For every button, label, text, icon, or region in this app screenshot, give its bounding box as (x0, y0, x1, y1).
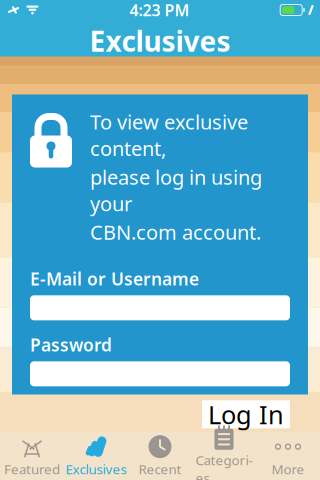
staticText: Forgot Password? (30, 446, 126, 480)
staticText: Create Account (215, 446, 290, 480)
staticText: Log In (208, 397, 284, 431)
staticText: Password (30, 333, 112, 356)
button[interactable]: More (256, 432, 320, 480)
button[interactable]: Exclusives (64, 432, 128, 480)
staticText: Exclusives (65, 460, 126, 478)
staticText: Categories (195, 451, 252, 480)
staticText: please log in using your (90, 164, 262, 217)
button[interactable]: Forgot Password? (30, 446, 126, 480)
staticText: To view exclusive content, (90, 108, 248, 162)
staticText: CBN.com account. (90, 219, 261, 245)
staticText: 4:23 PM (129, 0, 189, 21)
staticText: Recent (138, 460, 181, 478)
staticText: More (271, 460, 304, 478)
staticText: Featured (4, 460, 60, 478)
button[interactable]: Categories (192, 432, 256, 480)
button[interactable]: Create Account (215, 446, 290, 480)
button[interactable]: Featured (0, 432, 64, 480)
staticText: E-Mail or Username (30, 267, 199, 290)
button[interactable]: Recent (128, 432, 192, 480)
staticText: Exclusives (89, 22, 230, 60)
button[interactable]: Log In (202, 400, 290, 428)
